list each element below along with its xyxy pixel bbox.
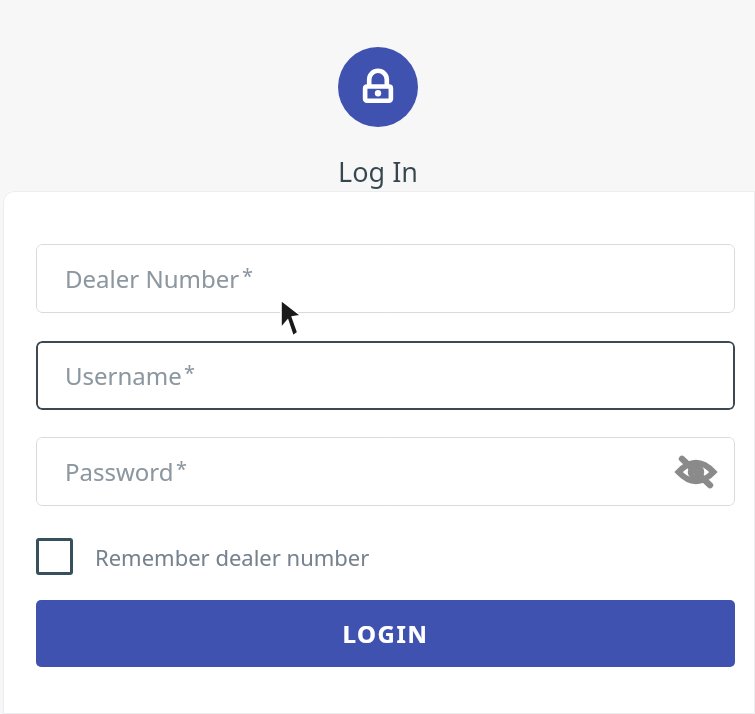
staticText: Log In — [338, 153, 418, 190]
button[interactable]: Show password — [675, 451, 717, 493]
button[interactable]: Username — [36, 341, 735, 410]
button[interactable]: Password — [36, 437, 735, 506]
button[interactable]: LOGIN — [36, 600, 735, 667]
staticText: Username — [65, 359, 182, 392]
staticText: * — [242, 262, 254, 289]
button[interactable]: Dealer Number — [36, 244, 735, 313]
staticText: Password — [65, 455, 174, 488]
staticText: LOGIN — [342, 617, 429, 650]
staticText: Remember dealer number — [95, 542, 370, 572]
staticText: * — [176, 455, 188, 482]
staticText: * — [184, 359, 196, 386]
staticText: Dealer Number — [65, 262, 240, 295]
button[interactable]: Remember dealer number — [36, 538, 378, 575]
